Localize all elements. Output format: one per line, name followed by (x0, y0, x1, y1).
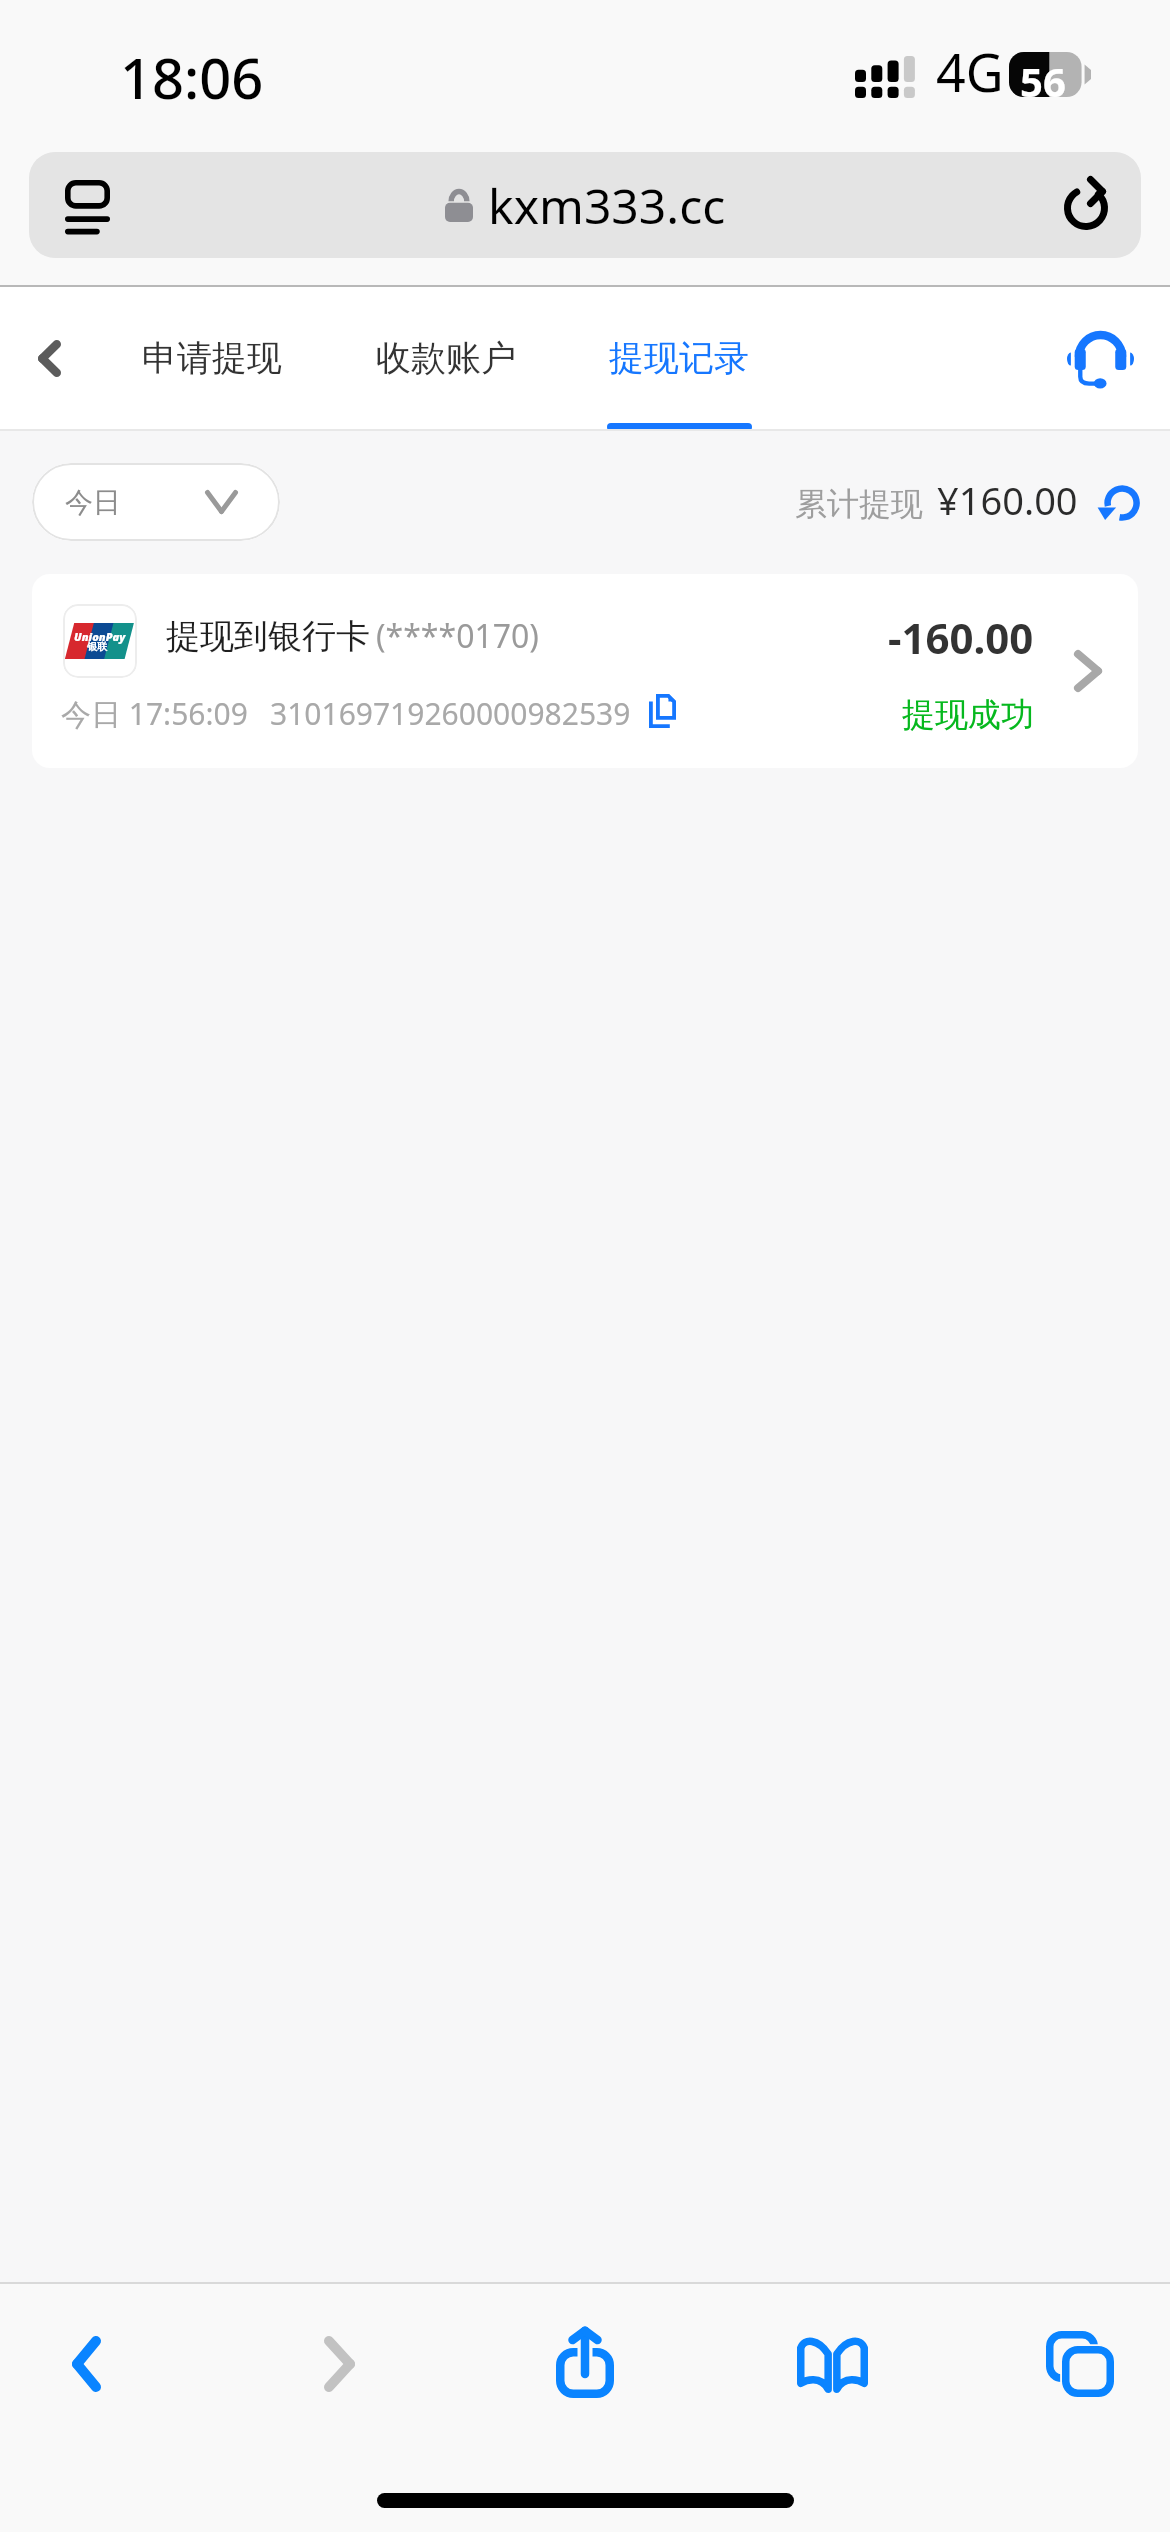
button[interactable]: Back (8, 313, 92, 397)
staticText: 今日 17:56:09 (61, 693, 248, 734)
button[interactable]: 申请提现 (129, 287, 295, 431)
staticText: kxm333.cc (488, 173, 726, 238)
button[interactable]: Bookmarks (772, 2312, 893, 2415)
staticText: 申请提现 (142, 336, 282, 380)
staticText: ¥160.00 (937, 474, 1078, 526)
button[interactable]: 收款账户 (363, 287, 529, 431)
button[interactable]: Reload (1049, 168, 1123, 242)
staticText: 今日 (65, 485, 121, 520)
staticText: 18:06 (120, 39, 264, 115)
staticText: 提现到银行卡 (166, 615, 370, 658)
button[interactable]: 今日 (32, 463, 280, 541)
button[interactable]: Refresh (1082, 470, 1154, 542)
staticText: 提现成功 (902, 694, 1034, 736)
button[interactable]: Share (531, 2304, 639, 2420)
button[interactable]: Back (47, 2314, 126, 2414)
button[interactable]: Copy (632, 676, 692, 736)
staticText: (****0170) (376, 614, 539, 658)
button[interactable]: Tabs (1021, 2309, 1139, 2419)
staticText: 收款账户 (376, 336, 516, 380)
button[interactable]: Customer service (1047, 305, 1153, 405)
staticText: 提现记录 (609, 336, 749, 380)
staticText: 310169719260000982539 (270, 693, 631, 734)
staticText: -160.00 (888, 609, 1034, 666)
button[interactable]: Forward (299, 2314, 380, 2414)
staticText: 银联 (87, 640, 107, 653)
staticText: 56 (1020, 54, 1066, 108)
staticText: 4G (936, 36, 1004, 107)
staticText: UnionPay (74, 629, 126, 644)
staticText: 累计提现 (795, 484, 923, 524)
button[interactable]: Page settings (37, 155, 117, 235)
button[interactable]: 提现记录 (596, 287, 762, 431)
button[interactable]: Page settings (29, 152, 1141, 258)
button[interactable]: UnionPay (32, 574, 1138, 768)
